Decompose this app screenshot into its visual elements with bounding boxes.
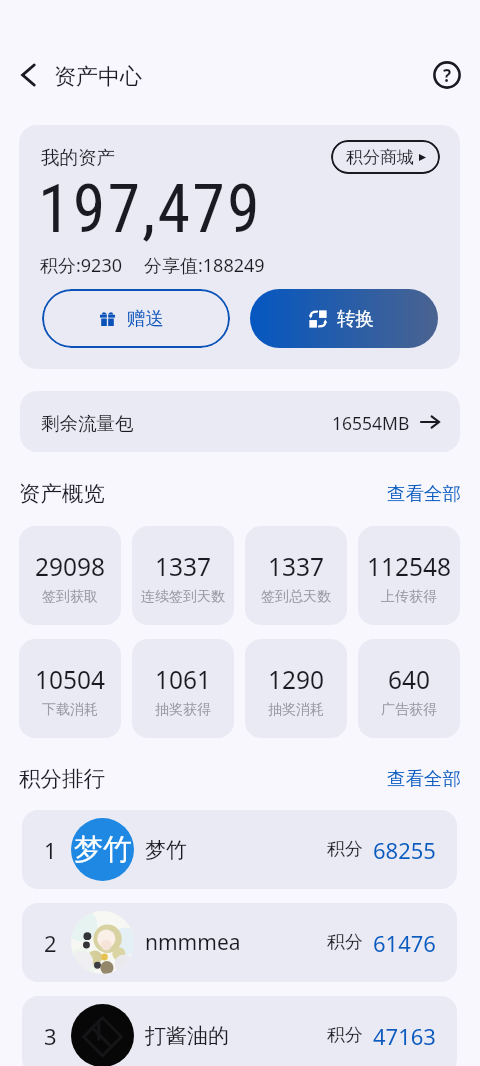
staticText: 16554MB <box>332 411 410 435</box>
button[interactable]: 转换 <box>250 289 438 348</box>
button[interactable]: 1337 <box>132 526 234 625</box>
button[interactable]: 1337 <box>245 526 347 625</box>
staticText: 查看全部 <box>387 482 461 505</box>
staticText: 梦竹 <box>74 831 132 868</box>
staticText: 积分:9230 <box>40 253 123 278</box>
staticText: ? <box>443 64 452 87</box>
staticText: 剩余流量包 <box>41 412 134 435</box>
staticText: 640 <box>388 663 431 696</box>
staticText: 2 <box>44 928 54 958</box>
staticText: 68255 <box>373 835 436 865</box>
staticText: 积分排行 <box>19 765 105 792</box>
button[interactable]: 1061 <box>132 639 234 738</box>
button[interactable]: 赠送 <box>42 289 230 348</box>
staticText: 梦竹 <box>145 837 187 863</box>
button[interactable]: 查看全部 <box>387 482 461 505</box>
staticText: nmmmea <box>145 928 241 957</box>
button[interactable]: Back <box>10 56 48 94</box>
button[interactable]: 3 <box>22 996 457 1066</box>
button[interactable]: 1290 <box>245 639 347 738</box>
staticText: 积分 <box>327 1024 363 1047</box>
staticText: 资产中心 <box>54 63 142 91</box>
staticText: 112548 <box>367 550 452 583</box>
staticText: 积分 <box>327 838 363 861</box>
button[interactable]: Help <box>430 58 464 92</box>
staticText: 上传获得 <box>381 588 437 606</box>
staticText: 签到总天数 <box>261 588 331 606</box>
staticText: 积分商城 <box>346 147 414 168</box>
button[interactable]: 2 <box>22 903 457 982</box>
staticText: 打酱油的 <box>145 1023 229 1049</box>
button[interactable]: 1 <box>22 810 457 889</box>
staticText: 签到获取 <box>42 588 98 606</box>
staticText: 资产概览 <box>19 480 105 507</box>
staticText: 1061 <box>155 663 212 696</box>
staticText: 1337 <box>155 550 212 583</box>
staticText: 47163 <box>373 1021 436 1051</box>
staticText: 广告获得 <box>381 701 437 719</box>
staticText: 下载消耗 <box>42 701 98 719</box>
staticText: 转换 <box>337 307 374 330</box>
staticText: 连续签到天数 <box>141 588 225 606</box>
staticText: 10504 <box>35 663 106 696</box>
staticText: 197,479 <box>38 171 262 248</box>
button[interactable]: 640 <box>358 639 460 738</box>
staticText: 1337 <box>268 550 325 583</box>
staticText: 3 <box>44 1021 54 1051</box>
staticText: 抽奖获得 <box>155 701 211 719</box>
staticText: 抽奖消耗 <box>268 701 324 719</box>
staticText: 1290 <box>268 663 325 696</box>
button[interactable]: 10504 <box>19 639 121 738</box>
button[interactable]: 查看全部 <box>387 767 461 790</box>
button[interactable]: 剩余流量包 <box>20 391 460 452</box>
staticText: 1 <box>44 835 54 865</box>
staticText: 29098 <box>35 550 106 583</box>
staticText: 赠送 <box>127 307 164 330</box>
staticText: 61476 <box>373 928 436 958</box>
staticText: 积分 <box>327 931 363 954</box>
staticText: 查看全部 <box>387 767 461 790</box>
button[interactable]: 积分商城 <box>331 140 440 174</box>
staticText: 分享值:188249 <box>144 253 265 278</box>
staticText: 我的资产 <box>41 146 115 169</box>
button[interactable]: 112548 <box>358 526 460 625</box>
button[interactable]: 29098 <box>19 526 121 625</box>
